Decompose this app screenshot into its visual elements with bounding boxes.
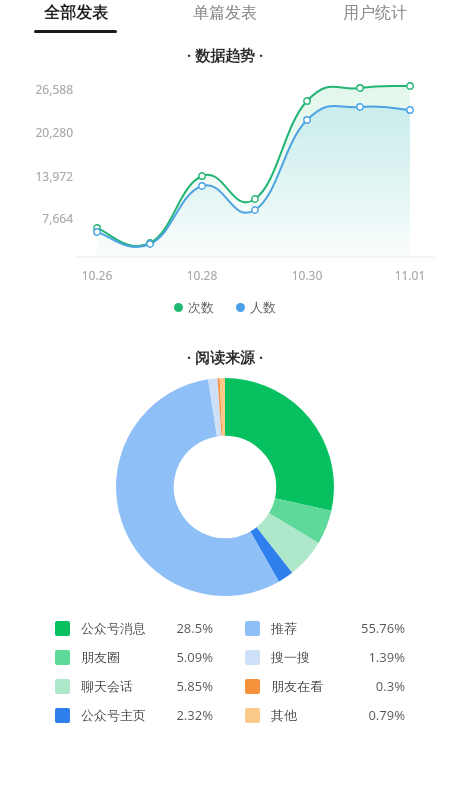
staticText: 26,588: [17, 81, 73, 97]
button[interactable]: 人数: [236, 299, 276, 315]
staticText: 2.32%: [153, 706, 213, 724]
button[interactable]: 推荐: [245, 619, 405, 637]
button[interactable]: 搜一搜: [245, 648, 405, 666]
button[interactable]: 公众号主页: [55, 706, 213, 724]
button[interactable]: 用户统计: [300, 0, 450, 36]
button[interactable]: 朋友在看: [245, 677, 405, 695]
staticText: 次数: [188, 299, 214, 315]
staticText: 0.79%: [343, 706, 405, 724]
staticText: 公众号主页: [81, 707, 146, 723]
button[interactable]: 聊天会话: [55, 677, 213, 695]
staticText: · 阅读来源 ·: [187, 347, 264, 367]
staticText: 13,972: [17, 168, 73, 184]
staticText: 公众号消息: [81, 620, 146, 636]
staticText: 20,280: [17, 124, 73, 140]
staticText: 55.76%: [343, 619, 405, 637]
button[interactable]: 单篇发表: [150, 0, 300, 36]
staticText: 1.39%: [343, 648, 405, 666]
staticText: 搜一搜: [271, 649, 310, 665]
staticText: 全部发表: [44, 3, 108, 23]
staticText: 5.85%: [153, 677, 213, 695]
staticText: · 数据趋势 ·: [187, 45, 264, 65]
staticText: 28.5%: [153, 619, 213, 637]
button[interactable]: 公众号消息: [55, 619, 213, 637]
staticText: 单篇发表: [193, 3, 257, 23]
staticText: 5.09%: [153, 648, 213, 666]
staticText: 10.26: [69, 267, 125, 283]
staticText: 0.3%: [343, 677, 405, 695]
staticText: 朋友圈: [81, 649, 120, 665]
staticText: 推荐: [271, 620, 297, 636]
staticText: 其他: [271, 707, 297, 723]
staticText: 10.28: [174, 267, 230, 283]
button[interactable]: 次数: [174, 299, 214, 315]
staticText: 朋友在看: [271, 678, 323, 694]
staticText: 用户统计: [343, 3, 407, 23]
staticText: 7,664: [17, 210, 73, 226]
button[interactable]: 其他: [245, 706, 405, 724]
button[interactable]: 朋友圈: [55, 648, 213, 666]
staticText: 聊天会话: [81, 678, 133, 694]
button[interactable]: 全部发表: [0, 0, 150, 36]
staticText: 10.30: [279, 267, 335, 283]
staticText: 11.01: [382, 267, 438, 283]
staticText: 人数: [250, 299, 276, 315]
other: 阅读来源环形图: [116, 378, 334, 596]
